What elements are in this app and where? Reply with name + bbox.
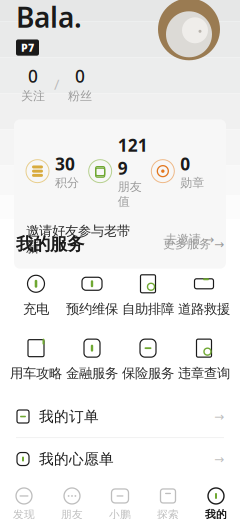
button[interactable]: 0 (63, 65, 97, 103)
button[interactable]: 我的 (192, 481, 240, 519)
staticText: → (214, 452, 224, 466)
button[interactable]: 更多服务 (163, 237, 224, 251)
button[interactable]: 0 (151, 152, 214, 190)
staticText: / (54, 74, 59, 94)
button[interactable]: 保险服务 (120, 333, 176, 385)
staticText: P7 (21, 40, 34, 55)
staticText: 我的订单 (39, 407, 99, 425)
staticText: → (214, 237, 224, 251)
staticText: 发现 (13, 508, 35, 519)
staticText: → (214, 410, 224, 423)
staticText: 金融服务 (66, 365, 118, 381)
button[interactable]: 我的心愿单 (0, 438, 240, 480)
staticText: 1219 (118, 133, 148, 179)
staticText: 关注 (21, 89, 45, 103)
staticText: 小鹏 (109, 508, 131, 519)
staticText: 更多服务 (163, 237, 211, 251)
staticText: 用车攻略 (10, 365, 62, 381)
staticText: 30 (55, 152, 75, 175)
staticText: 充电 (23, 301, 49, 317)
staticText: 我的心愿单 (39, 450, 114, 468)
button[interactable]: 自助排障 (120, 269, 176, 321)
staticText: 勋章 (180, 175, 204, 190)
staticText: 保险服务 (122, 365, 174, 381)
button[interactable]: 用车攻略 (8, 333, 64, 385)
button[interactable]: 道路救援 (176, 269, 232, 321)
staticText: 0 (28, 65, 38, 88)
button[interactable]: 朋友 (48, 481, 96, 519)
staticText: Bala. (16, 0, 82, 35)
staticText: 我的 (205, 508, 227, 519)
staticText: 预约维保 (66, 301, 118, 317)
staticText: 积分 (55, 175, 79, 190)
staticText: 违章查询 (178, 365, 230, 381)
staticText: 粉丝 (68, 89, 92, 103)
staticText: 自助排障 (122, 301, 174, 317)
staticText: 道路救援 (178, 301, 230, 317)
button[interactable]: 预约维保 (64, 269, 120, 321)
staticText: 0 (180, 152, 190, 175)
staticText: 朋友值 (118, 179, 142, 209)
staticText: → (204, 232, 214, 246)
button[interactable]: 小鹏 (96, 481, 144, 519)
button[interactable]: 违章查询 (176, 333, 232, 385)
staticText: 朋友 (61, 508, 83, 519)
button[interactable]: 30 (26, 152, 89, 190)
button[interactable]: 邀请好友参与老带新 (14, 223, 226, 269)
button[interactable]: 我的订单 (0, 395, 240, 437)
button[interactable]: 探索 (144, 481, 192, 519)
staticText: 0 (75, 65, 85, 88)
button[interactable]: 发现 (0, 481, 48, 519)
staticText: 去邀请 (165, 232, 201, 247)
button[interactable]: 充电 (8, 269, 64, 321)
button[interactable]: 金融服务 (64, 333, 120, 385)
button[interactable]: 0 (16, 65, 50, 103)
staticText: 我的服务 (16, 233, 84, 255)
button[interactable]: 1219 (89, 133, 151, 209)
staticText: 邀请好友参与老带新 (26, 223, 130, 256)
staticText: 探索 (157, 508, 179, 519)
button[interactable]: 头像 (158, 0, 220, 60)
